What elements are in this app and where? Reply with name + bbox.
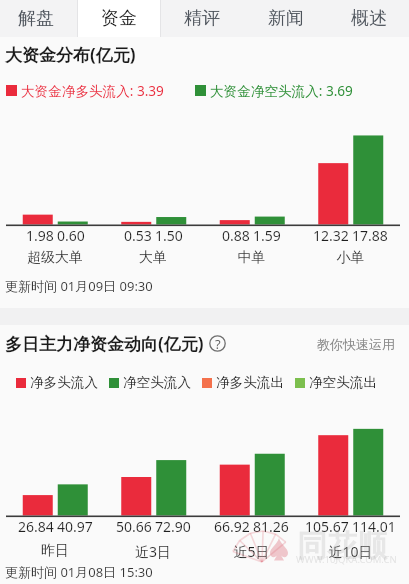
staticText: 0.88 xyxy=(222,226,250,245)
staticText: 26.84 xyxy=(18,517,54,536)
staticText: WWW.10JQKA.COM.CN xyxy=(296,553,397,566)
button[interactable]: 资金 xyxy=(77,0,160,37)
staticText: 资金 xyxy=(101,7,137,30)
staticText: 同花顺 xyxy=(297,527,387,565)
staticText: 净空头流出 xyxy=(309,374,377,391)
staticText: 1.98 xyxy=(26,226,54,245)
staticText: 解盘 xyxy=(18,7,54,30)
staticText: 0.60 xyxy=(57,226,85,245)
staticText: 净空头流入 xyxy=(123,374,191,391)
staticText: 近5日 xyxy=(202,542,301,561)
staticText: 小单 xyxy=(301,249,400,267)
staticText: 更新时间 01月09日 09:30 xyxy=(5,277,153,295)
staticText: 概述 xyxy=(351,7,387,30)
staticText: 大资金分布(亿元) xyxy=(5,43,136,66)
staticText: 超级大单 xyxy=(6,249,104,267)
staticText: 新闻 xyxy=(268,7,304,30)
staticText: 50.66 xyxy=(116,517,152,536)
staticText: 12.32 xyxy=(313,226,349,245)
staticText: 净多头流出 xyxy=(216,374,284,391)
staticText: 近10日 xyxy=(301,542,400,561)
button[interactable]: 新闻 xyxy=(244,0,327,37)
staticText: 大资金净空头流入: 3.69 xyxy=(210,81,353,100)
staticText: 17.88 xyxy=(352,226,388,245)
button[interactable]: 概述 xyxy=(327,0,409,37)
staticText: 72.90 xyxy=(155,517,191,536)
button[interactable]: 精评 xyxy=(160,0,243,37)
staticText: 81.26 xyxy=(253,517,289,536)
staticText: 净多头流入 xyxy=(30,374,98,391)
staticText: 105.67 xyxy=(305,517,349,536)
staticText: 66.92 xyxy=(214,517,250,536)
staticText: 昨日 xyxy=(6,542,104,560)
staticText: 大资金净多头流入: 3.39 xyxy=(21,81,164,100)
staticText: 40.97 xyxy=(57,517,93,536)
staticText: 1.59 xyxy=(253,226,281,245)
button[interactable]: 教你快速运用 xyxy=(317,336,395,352)
staticText: 1.50 xyxy=(155,226,183,245)
button[interactable]: 解盘 xyxy=(0,0,77,37)
staticText: 精评 xyxy=(184,7,220,30)
staticText: 114.01 xyxy=(352,517,396,536)
staticText: 大单 xyxy=(104,249,202,267)
staticText: 更新时间 01月08日 15:30 xyxy=(5,563,153,581)
staticText: 多日主力净资金动向(亿元) xyxy=(5,332,204,355)
staticText: 0.53 xyxy=(124,226,152,245)
button[interactable]: 帮助 xyxy=(209,335,226,352)
staticText: 近3日 xyxy=(104,542,202,561)
staticText: ? xyxy=(215,335,221,352)
staticText: 中单 xyxy=(202,249,301,267)
